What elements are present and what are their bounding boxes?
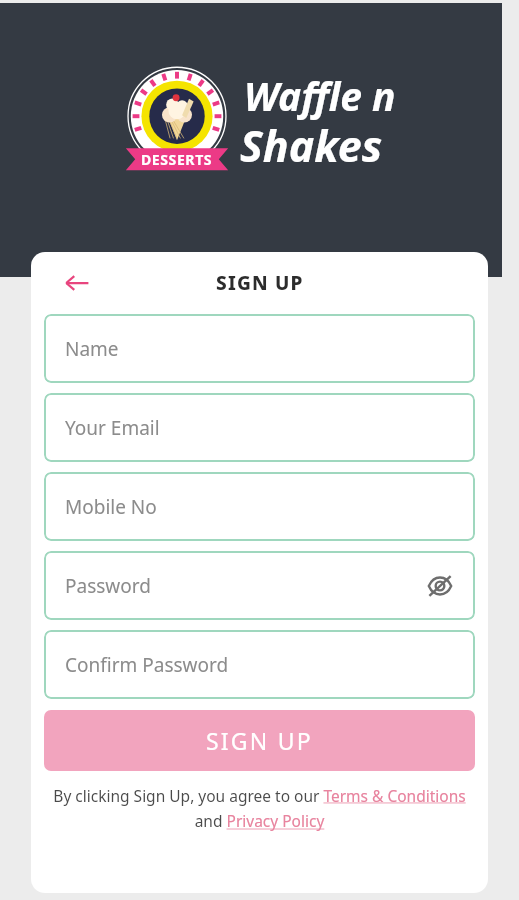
staticText: Password	[65, 573, 151, 599]
staticText: SIGN UP	[206, 725, 313, 756]
button[interactable]: Mobile No	[44, 472, 475, 541]
staticText: Shakes	[240, 116, 383, 175]
staticText: Waffle n	[244, 69, 396, 122]
staticText: Confirm Password	[65, 652, 229, 678]
staticText: Your Email	[65, 415, 160, 441]
button[interactable]: By clicking Sign Up, you agree to our Te…	[48, 785, 471, 832]
button[interactable]: Back	[57, 263, 97, 303]
staticText: SIGN UP	[216, 270, 304, 296]
button[interactable]: Toggle password visibility	[423, 569, 457, 603]
button[interactable]: Confirm Password	[44, 630, 475, 699]
staticText: DESSERTS	[141, 150, 213, 169]
staticText: Mobile No	[65, 494, 157, 520]
button[interactable]: Name	[44, 314, 475, 383]
button[interactable]: SIGN UP	[44, 710, 475, 771]
button[interactable]: Password	[44, 551, 475, 620]
staticText: Name	[65, 336, 119, 362]
button[interactable]: Your Email	[44, 393, 475, 462]
